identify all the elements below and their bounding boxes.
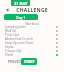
button[interactable]: Squat	[0, 45, 64, 49]
button[interactable]: Push Ups	[0, 33, 64, 37]
staticText: Plank	[5, 53, 14, 57]
staticText: Squat	[5, 45, 14, 49]
staticText: 21 DAY	[14, 1, 28, 6]
staticText: Push Ups	[5, 33, 20, 37]
button[interactable]: Back	[5, 7, 10, 12]
staticText: Triceps Dip	[5, 49, 22, 53]
button[interactable]: Wall Sit	[0, 29, 64, 33]
button[interactable]: Jumping Jacks	[0, 25, 64, 29]
button[interactable]: START	[21, 58, 37, 65]
button[interactable]: Plank	[0, 53, 64, 57]
staticText: Abdominal Crunch	[5, 37, 33, 41]
staticText: START	[24, 59, 35, 64]
staticText: Jumping Jacks	[5, 25, 26, 29]
staticText: Step Up onto Chair	[5, 41, 34, 45]
button[interactable]: Triceps Dip	[0, 49, 64, 53]
staticText: CHALLENGE	[0, 7, 64, 14]
button[interactable]: Day 1	[4, 14, 38, 20]
staticText: Wall Sit	[5, 29, 16, 33]
button[interactable]: Abdominal Crunch	[0, 37, 64, 41]
button[interactable]: 21 DAY	[11, 0, 30, 6]
button[interactable]: Step Up onto Chair	[0, 41, 64, 45]
button[interactable]: PREVIOUS	[8, 59, 26, 64]
staticText: Workout	[0, 21, 64, 26]
staticText: Day 1	[16, 15, 26, 20]
